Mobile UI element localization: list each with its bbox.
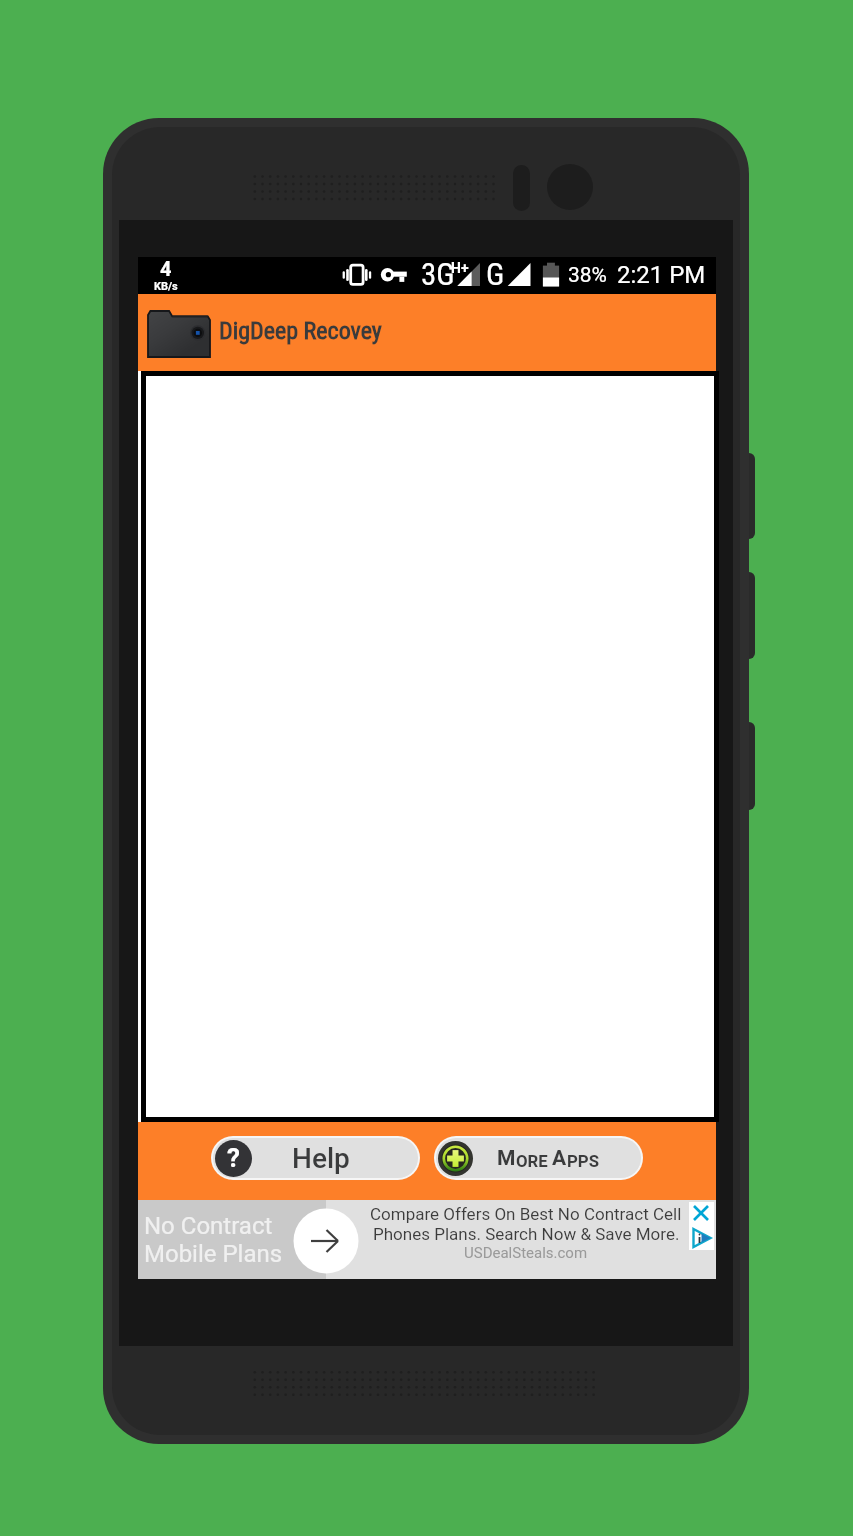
staticText: ? [227, 1143, 240, 1173]
staticText: H+ [451, 260, 469, 276]
staticText: Compare Offers On Best No Contract Cell [370, 1204, 682, 1224]
staticText: Mobile Plans [144, 1240, 283, 1268]
staticText: 4 [160, 257, 172, 280]
staticText: DigDeep Recovey [219, 317, 382, 345]
staticText: Phones Plans. Search Now & Save More. [373, 1224, 680, 1244]
staticText: G [486, 256, 505, 292]
staticText: USDealSteals.com [464, 1244, 588, 1262]
button[interactable]: Ad choices [689, 1202, 714, 1250]
staticText: ORE [516, 1151, 552, 1171]
staticText: KB/s [154, 280, 178, 293]
staticText: Help [292, 1142, 350, 1175]
staticText: 3G [421, 256, 455, 292]
staticText: M [497, 1146, 516, 1171]
staticText: No Contract [144, 1212, 273, 1240]
button[interactable]: ? [213, 1138, 418, 1178]
staticText: 38% [568, 263, 607, 288]
staticText: PPS [567, 1151, 600, 1171]
staticText: 2:21 PM [617, 261, 706, 289]
staticText: A [552, 1146, 567, 1171]
button[interactable]: M [436, 1138, 641, 1178]
